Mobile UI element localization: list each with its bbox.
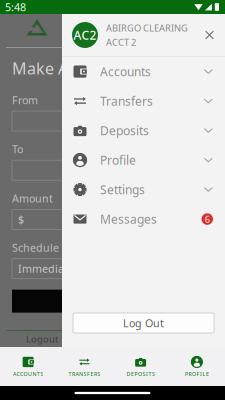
- staticText: Accounts: [100, 64, 151, 79]
- staticText: Settings: [100, 182, 145, 197]
- staticText: Immediate: [18, 261, 74, 276]
- button[interactable]: Deposits: [62, 116, 225, 145]
- button[interactable]: Account ABIRGO CLEARING ACCT 2: [62, 14, 225, 56]
- button[interactable]: Messages: [62, 204, 225, 234]
- staticText: DEPOSITS: [126, 370, 155, 378]
- staticText: ACCT 2: [106, 36, 136, 48]
- button[interactable]: TRANSFERS: [56, 347, 112, 386]
- button[interactable]: Profile: [62, 145, 225, 175]
- staticText: 6: [205, 213, 210, 225]
- staticText: PROFILE: [185, 370, 209, 378]
- staticText: Deposits: [100, 123, 149, 138]
- staticText: AC2: [73, 27, 96, 43]
- staticText: Messages: [100, 211, 157, 227]
- button[interactable]: Accounts: [62, 57, 225, 86]
- staticText: $: [18, 212, 24, 227]
- button[interactable]: Log Out: [73, 313, 214, 333]
- staticText: L B S T: [31, 36, 43, 42]
- button[interactable]: PROFILE: [169, 347, 225, 386]
- staticText: Logout: [26, 333, 58, 345]
- staticText: To: [12, 142, 23, 156]
- staticText: ABIRGO CLEARING: [106, 22, 188, 34]
- staticText: From: [12, 93, 38, 107]
- staticText: 5:48: [5, 0, 26, 14]
- staticText: ACCOUNTS: [13, 370, 43, 378]
- staticText: Profile: [100, 152, 136, 168]
- button[interactable]: Settings: [62, 175, 225, 204]
- button[interactable]: ACCOUNTS: [0, 347, 56, 386]
- staticText: Make A Transfer: [12, 58, 135, 79]
- staticText: Transfers: [100, 93, 153, 109]
- button[interactable]: DEPOSITS: [112, 347, 169, 386]
- staticText: Log Out: [123, 316, 164, 330]
- button[interactable]: Transfers: [62, 86, 225, 116]
- staticText: Amount: [12, 191, 53, 205]
- staticText: Schedule: [12, 240, 59, 255]
- staticText: TRANSFERS: [68, 370, 100, 378]
